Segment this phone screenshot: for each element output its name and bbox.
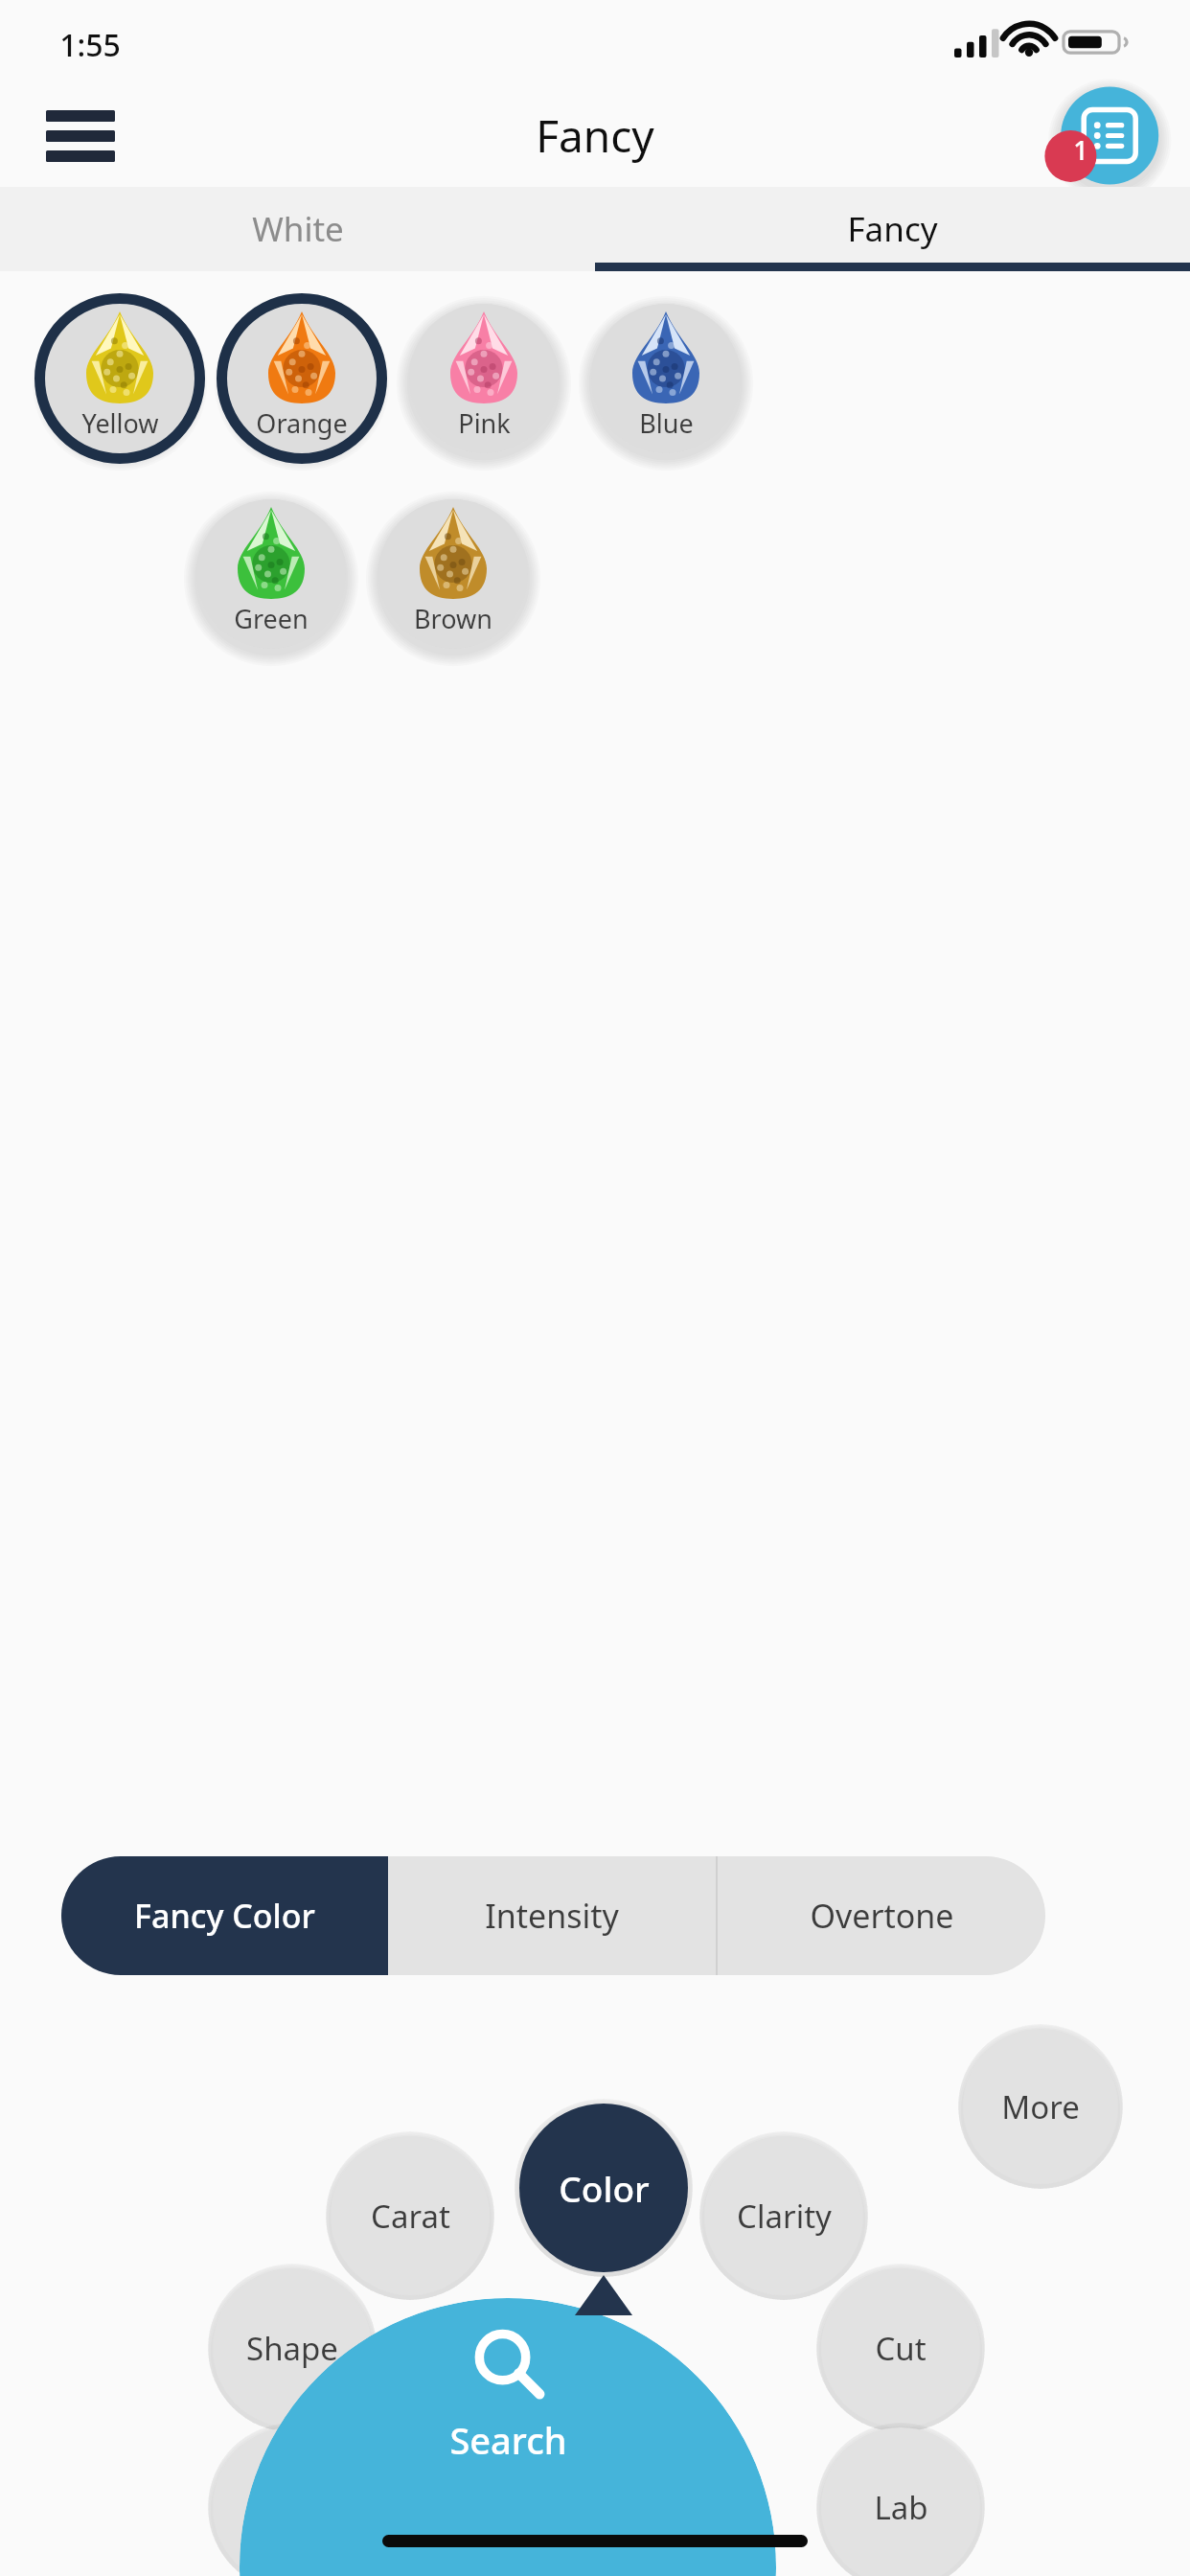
staticText: Pink <box>458 405 511 441</box>
staticText: 1 <box>1073 132 1088 168</box>
button[interactable]: Overtone <box>718 1856 1045 1975</box>
button[interactable]: Fancy <box>595 187 1190 271</box>
button[interactable]: Fancy Color <box>61 1856 388 1975</box>
button[interactable]: Shape <box>208 2264 377 2432</box>
button[interactable]: Menu <box>36 96 125 176</box>
button[interactable]: Yellow <box>29 283 211 474</box>
staticText: Lab <box>874 2486 928 2529</box>
staticText: Carat <box>371 2195 450 2238</box>
staticText: Overtone <box>810 1894 954 1938</box>
staticText: Brown <box>414 601 492 636</box>
staticText: Fancy <box>536 105 654 166</box>
button[interactable]: Intensity <box>388 1856 716 1975</box>
staticText: Orange <box>256 405 348 441</box>
button[interactable]: Search <box>240 2298 776 2576</box>
staticText: Cut <box>875 2327 927 2370</box>
staticText: Blue <box>639 405 694 441</box>
button[interactable]: Lab <box>816 2423 985 2576</box>
staticText: Fancy Color <box>134 1894 315 1938</box>
button[interactable]: More <box>958 2024 1123 2189</box>
staticText: Fancy <box>847 206 938 252</box>
button[interactable]: Brown <box>362 478 544 670</box>
button[interactable]: Blue <box>575 283 757 474</box>
staticText: Green <box>234 601 309 636</box>
staticText: Search <box>449 2415 567 2465</box>
button[interactable]: White <box>0 187 595 271</box>
staticText: More <box>1001 2085 1080 2128</box>
staticText: Color <box>559 2164 650 2212</box>
staticText: 1:55 <box>59 24 121 66</box>
button[interactable]: Price <box>208 2423 377 2576</box>
staticText: White <box>252 206 344 252</box>
button[interactable]: Saved list <box>1044 84 1163 187</box>
button[interactable]: Green <box>180 478 362 670</box>
staticText: Clarity <box>737 2195 832 2238</box>
staticText: Shape <box>246 2327 338 2370</box>
button[interactable]: Cut <box>816 2264 985 2432</box>
button[interactable]: Orange <box>211 283 393 474</box>
staticText: Yellow <box>81 405 159 441</box>
button[interactable]: Carat <box>326 2131 494 2300</box>
button[interactable]: Color <box>515 2099 693 2277</box>
button[interactable]: Clarity <box>699 2131 868 2300</box>
button[interactable]: Pink <box>393 283 575 474</box>
staticText: Intensity <box>485 1894 619 1938</box>
